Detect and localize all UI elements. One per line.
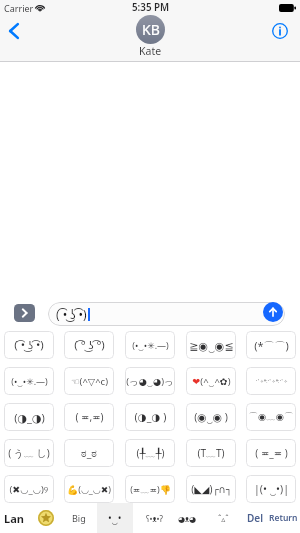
staticText: (◉‿◉ ) <box>194 410 228 424</box>
button[interactable]: ⌒◉﹏◉⌒ <box>246 403 296 431</box>
staticText: ⌒◉﹏◉⌒ <box>248 411 294 423</box>
staticText: KB <box>142 20 160 39</box>
button[interactable]: ˆ▵ˆ <box>206 503 241 533</box>
button[interactable]: ʕ•ᴥ•ʔ <box>137 503 172 533</box>
staticText: ಠ_ಠ <box>81 446 97 460</box>
button[interactable]: (✖◡_◡)୨ <box>4 475 54 503</box>
button[interactable]: (≖﹏≖)👎 <box>125 475 175 503</box>
staticText: ( ≖_≖ ) <box>255 446 288 460</box>
staticText: ( ≖,≖) <box>75 410 104 424</box>
button[interactable]: Return <box>268 503 298 533</box>
button[interactable]: (*⌒⌒) <box>246 331 296 359</box>
button[interactable]: Del <box>242 503 268 533</box>
staticText: Return <box>269 512 298 524</box>
staticText: ･ﾟ✧*:･ﾟ✧*:･ﾟ✧ <box>255 378 288 384</box>
button[interactable]: |(• ‿•)| <box>246 475 296 503</box>
staticText: |(• ‿•)| <box>254 482 289 496</box>
button[interactable]: Back <box>0 17 28 45</box>
staticText: ˆ▵ˆ <box>218 513 229 524</box>
button[interactable]: ≧◉‿◉≦ <box>186 331 236 359</box>
staticText: ≧◉‿◉≦ <box>189 338 234 353</box>
button[interactable]: Info <box>267 18 293 44</box>
staticText: (✖◡_◡)୨ <box>9 483 49 496</box>
button[interactable]: (•‿•✳.—) <box>4 367 54 395</box>
button[interactable]: ( ≖,≖) <box>64 403 114 431</box>
staticText: Carrier <box>4 2 34 14</box>
button[interactable]: (っ◕‿◕)っ <box>125 367 175 395</box>
staticText: (╀﹏╀) <box>136 446 165 460</box>
staticText: (•‿•✳.—) <box>11 375 48 387</box>
button[interactable]: 💪(◡_◡✖) <box>64 475 114 503</box>
staticText: (*⌒⌒) <box>254 338 289 353</box>
button[interactable]: (◉‿◉ ) <box>186 403 236 431</box>
button[interactable]: ( ≖_≖ ) <box>246 439 296 467</box>
staticText: ☜(^▽^c) <box>71 375 108 388</box>
button[interactable]: (◑_◑ ) <box>125 403 175 431</box>
staticText: (T﹏T) <box>197 446 225 460</box>
staticText: (◑_◑ ) <box>134 410 167 424</box>
button[interactable]: ( ͡• ͜ʖ ͡•) <box>48 302 285 326</box>
button[interactable]: (•‿•✳.—) <box>125 331 175 359</box>
staticText: ʕ•ᴥ•ʔ <box>146 513 163 524</box>
staticText: •‿• <box>108 511 122 525</box>
staticText: (◑_◑) <box>14 410 45 425</box>
staticText: Del <box>247 511 263 525</box>
staticText: (っ◕‿◕)っ <box>126 375 174 388</box>
button[interactable]: (◣◢)┌∩┐ <box>186 475 236 503</box>
button[interactable]: Big <box>60 503 97 533</box>
button[interactable]: (◑_◑) <box>4 403 54 431</box>
button[interactable]: ❤(^‿^✿) <box>186 367 236 395</box>
staticText: ( ͡• ͜ʖ ͡•) <box>14 337 44 353</box>
staticText: ( う﹏ し) <box>8 446 50 460</box>
staticText: Lan <box>4 511 24 526</box>
button[interactable]: ಠ_ಠ <box>64 439 114 467</box>
staticText: (≖﹏≖)👎 <box>130 483 171 495</box>
staticText: Kate <box>139 44 162 58</box>
button[interactable]: ･ﾟ✧*:･ﾟ✧*:･ﾟ✧ <box>246 367 296 395</box>
button[interactable]: Send <box>263 302 283 322</box>
staticText: 5:35 PM <box>132 1 170 14</box>
button[interactable]: •‿• <box>97 503 133 533</box>
staticText: ( ͡• ͜ʖ ͡•) <box>56 306 87 322</box>
staticText: 💪(◡_◡✖) <box>67 483 111 495</box>
staticText: Big <box>72 512 86 524</box>
button[interactable]: ◕ᴥ◕ <box>170 503 205 533</box>
button[interactable]: ( ͡° ͜ʖ ͡°) <box>64 331 114 359</box>
staticText: (•‿•✳.—) <box>132 339 169 351</box>
button[interactable]: Lan <box>0 503 56 533</box>
button[interactable]: ☜(^▽^c) <box>64 367 114 395</box>
button[interactable]: ( ͡• ͜ʖ ͡•) <box>4 331 54 359</box>
button[interactable]: ( う﹏ し) <box>4 439 54 467</box>
staticText: ( ͡° ͜ʖ ͡°) <box>74 337 105 353</box>
button[interactable]: Expand keyboard <box>14 304 35 322</box>
staticText: ❤(^‿^✿) <box>192 375 231 388</box>
staticText: ◕ᴥ◕ <box>178 513 197 524</box>
staticText: (◣◢)┌∩┐ <box>191 482 232 496</box>
button[interactable]: (╀﹏╀) <box>125 439 175 467</box>
button[interactable]: KB <box>136 15 165 58</box>
button[interactable]: (T﹏T) <box>186 439 236 467</box>
